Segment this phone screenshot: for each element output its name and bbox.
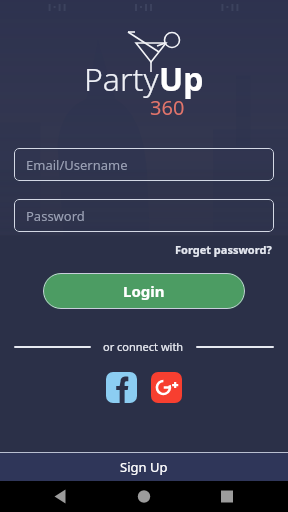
button[interactable]: Email/Username xyxy=(14,148,274,181)
staticText: 360 xyxy=(150,94,185,118)
staticText: Password xyxy=(26,207,85,225)
button[interactable]: Connect with Facebook xyxy=(106,372,137,403)
button[interactable]: Forget password? xyxy=(173,240,274,259)
staticText: Forget password? xyxy=(175,242,272,257)
button[interactable]: Password xyxy=(14,199,274,232)
staticText: Party xyxy=(84,57,159,101)
staticText: Email/Username xyxy=(26,156,128,174)
staticText: Login xyxy=(123,281,165,301)
button[interactable]: Sign Up xyxy=(0,452,288,481)
staticText: Sign Up xyxy=(120,458,168,476)
staticText: Up xyxy=(159,57,204,101)
button[interactable]: Login xyxy=(43,273,245,309)
button[interactable]: Connect with Google Plus xyxy=(151,372,182,403)
staticText: or connect with xyxy=(103,339,184,354)
